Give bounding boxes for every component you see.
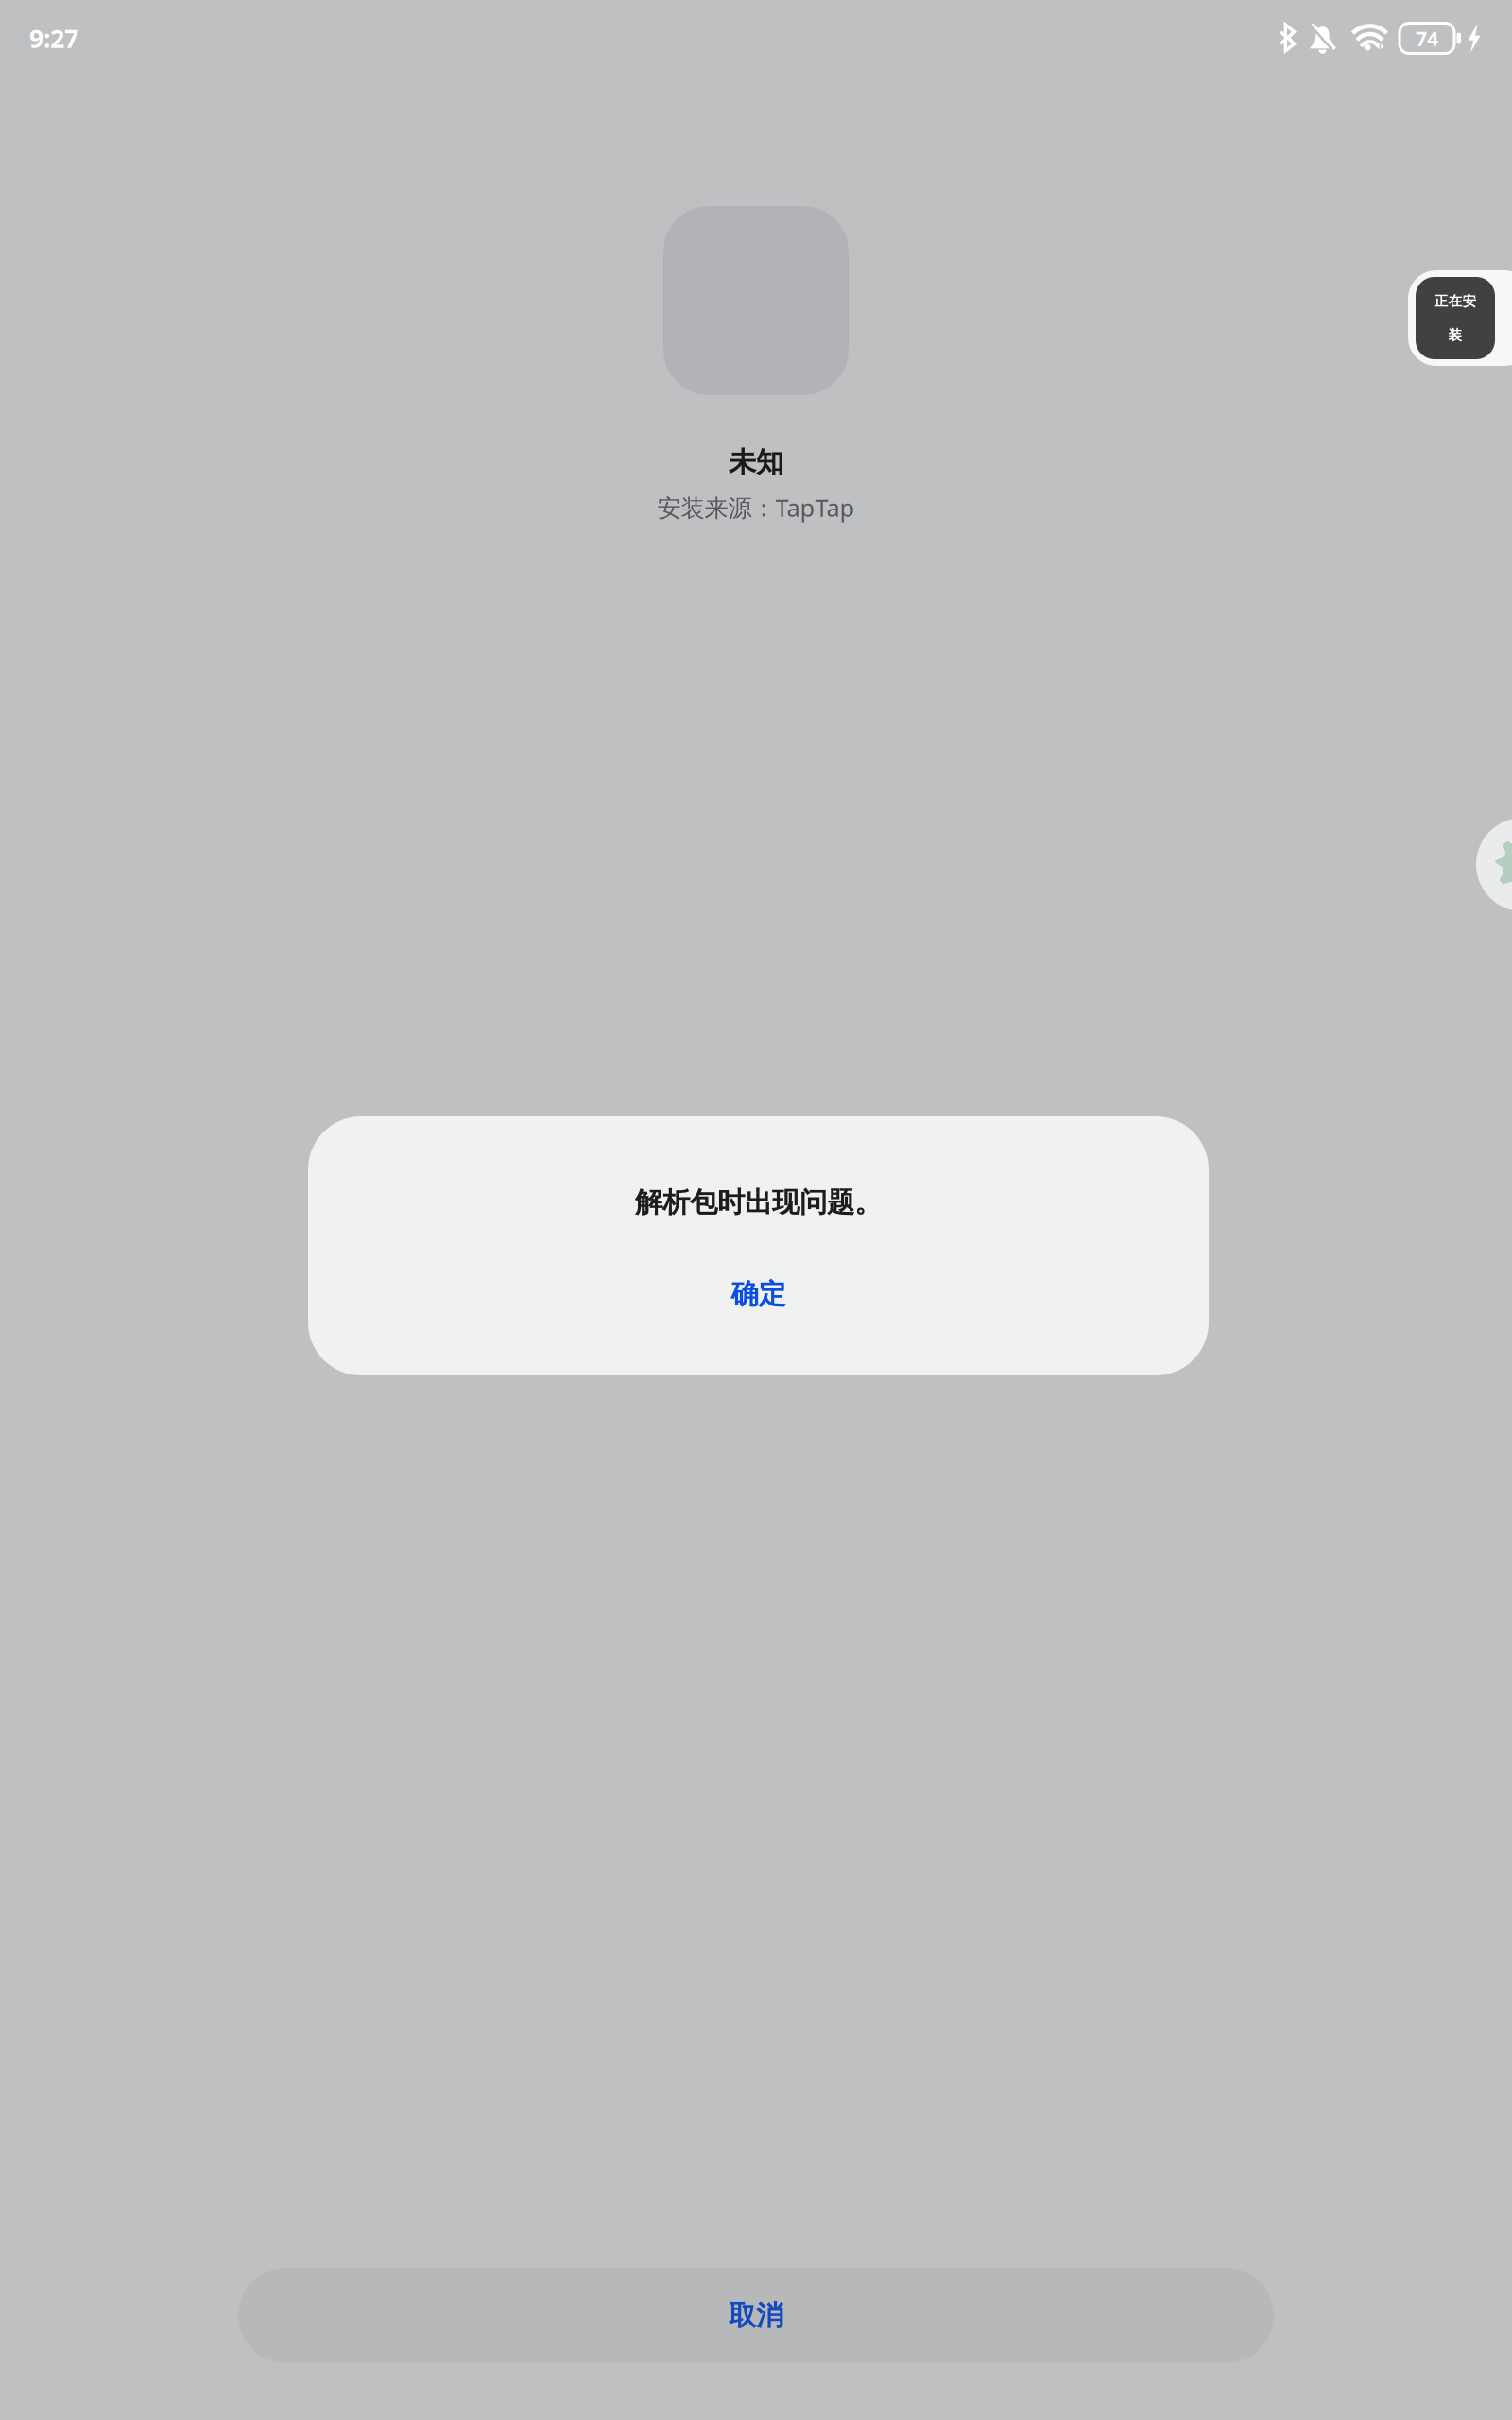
staticText: 74: [1416, 25, 1438, 52]
staticText: 取消: [729, 2299, 783, 2333]
button[interactable]: Accessibility shortcut: [1476, 818, 1512, 911]
button[interactable]: 确定: [308, 1270, 1209, 1318]
staticText: 装: [1448, 327, 1462, 344]
staticText: 9:27: [29, 22, 78, 55]
staticText: 确定: [731, 1277, 786, 1311]
staticText: 解析包时出现问题。: [635, 1185, 882, 1219]
staticText: 安装来源：TapTap: [657, 492, 855, 523]
button[interactable]: 取消: [238, 2268, 1274, 2363]
staticText: 未知: [729, 445, 783, 479]
staticText: 正在安: [1434, 293, 1477, 310]
